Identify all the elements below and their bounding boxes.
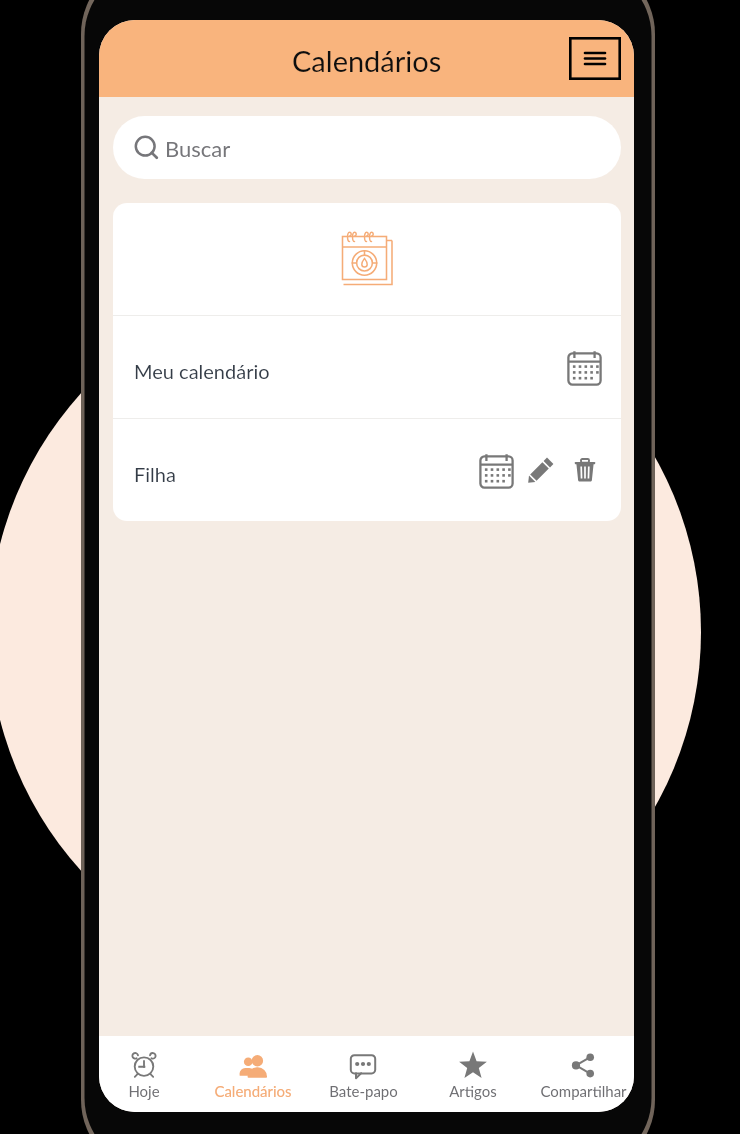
button[interactable]: Open calendar: [563, 346, 605, 388]
button[interactable]: Bate-papo: [308, 1036, 418, 1112]
button[interactable]: Artigos: [418, 1036, 528, 1112]
staticText: Bate-papo: [329, 1082, 398, 1100]
button[interactable]: Open calendar: [475, 449, 517, 491]
staticText: Calendários: [292, 43, 442, 78]
staticText: Compartilhar: [540, 1082, 627, 1100]
button[interactable]: Compartilhar: [528, 1036, 634, 1112]
button[interactable]: Buscar: [113, 116, 621, 179]
button[interactable]: Hoje: [99, 1036, 198, 1112]
staticText: Calendários: [214, 1082, 292, 1100]
staticText: Meu calendário: [134, 359, 270, 383]
button[interactable]: Menu: [569, 37, 621, 80]
button[interactable]: Edit: [521, 450, 561, 490]
staticText: Filha: [134, 462, 176, 486]
button[interactable]: Meu calendário: [113, 316, 621, 418]
staticText: Buscar: [165, 135, 231, 161]
staticText: Artigos: [449, 1082, 497, 1100]
button[interactable]: Filha: [113, 419, 621, 521]
button[interactable]: Delete: [565, 450, 605, 490]
button[interactable]: Calendários: [198, 1036, 308, 1112]
staticText: Hoje: [128, 1082, 160, 1100]
